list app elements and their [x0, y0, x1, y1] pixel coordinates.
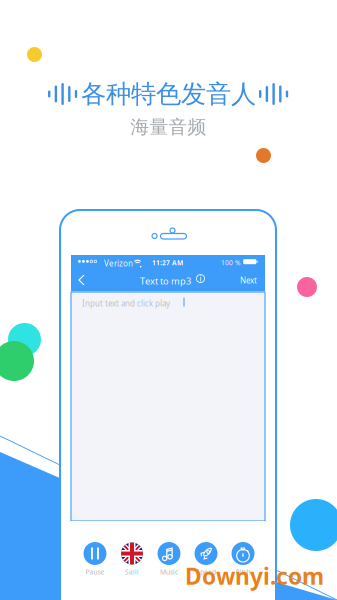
- staticText: i: [199, 273, 201, 284]
- staticText: 海量音频: [130, 115, 206, 138]
- button[interactable]: Speed: [187, 521, 224, 582]
- staticText: Music: [160, 567, 178, 576]
- button[interactable]: Pause: [76, 521, 113, 582]
- button[interactable]: Pitch: [224, 521, 261, 582]
- staticText: 11:27 AM: [152, 258, 183, 267]
- staticText: Downyi.com: [185, 561, 324, 591]
- staticText: Salli: [125, 567, 139, 576]
- button[interactable]: Back: [74, 269, 90, 291]
- button[interactable]: Next: [236, 270, 261, 291]
- staticText: Pitch: [235, 567, 250, 576]
- staticText: Speed: [196, 567, 216, 576]
- staticText: Text to mp3: [140, 275, 191, 287]
- staticText: Next: [240, 275, 257, 286]
- staticText: Input text and click play: [82, 298, 170, 309]
- staticText: Verizon: [104, 258, 133, 269]
- staticText: 各种特色发音人: [81, 78, 256, 109]
- staticText: Pause: [85, 567, 104, 576]
- button[interactable]: Music: [150, 521, 187, 582]
- staticText: 100 %: [221, 258, 241, 267]
- button[interactable]: Salli: [113, 521, 150, 582]
